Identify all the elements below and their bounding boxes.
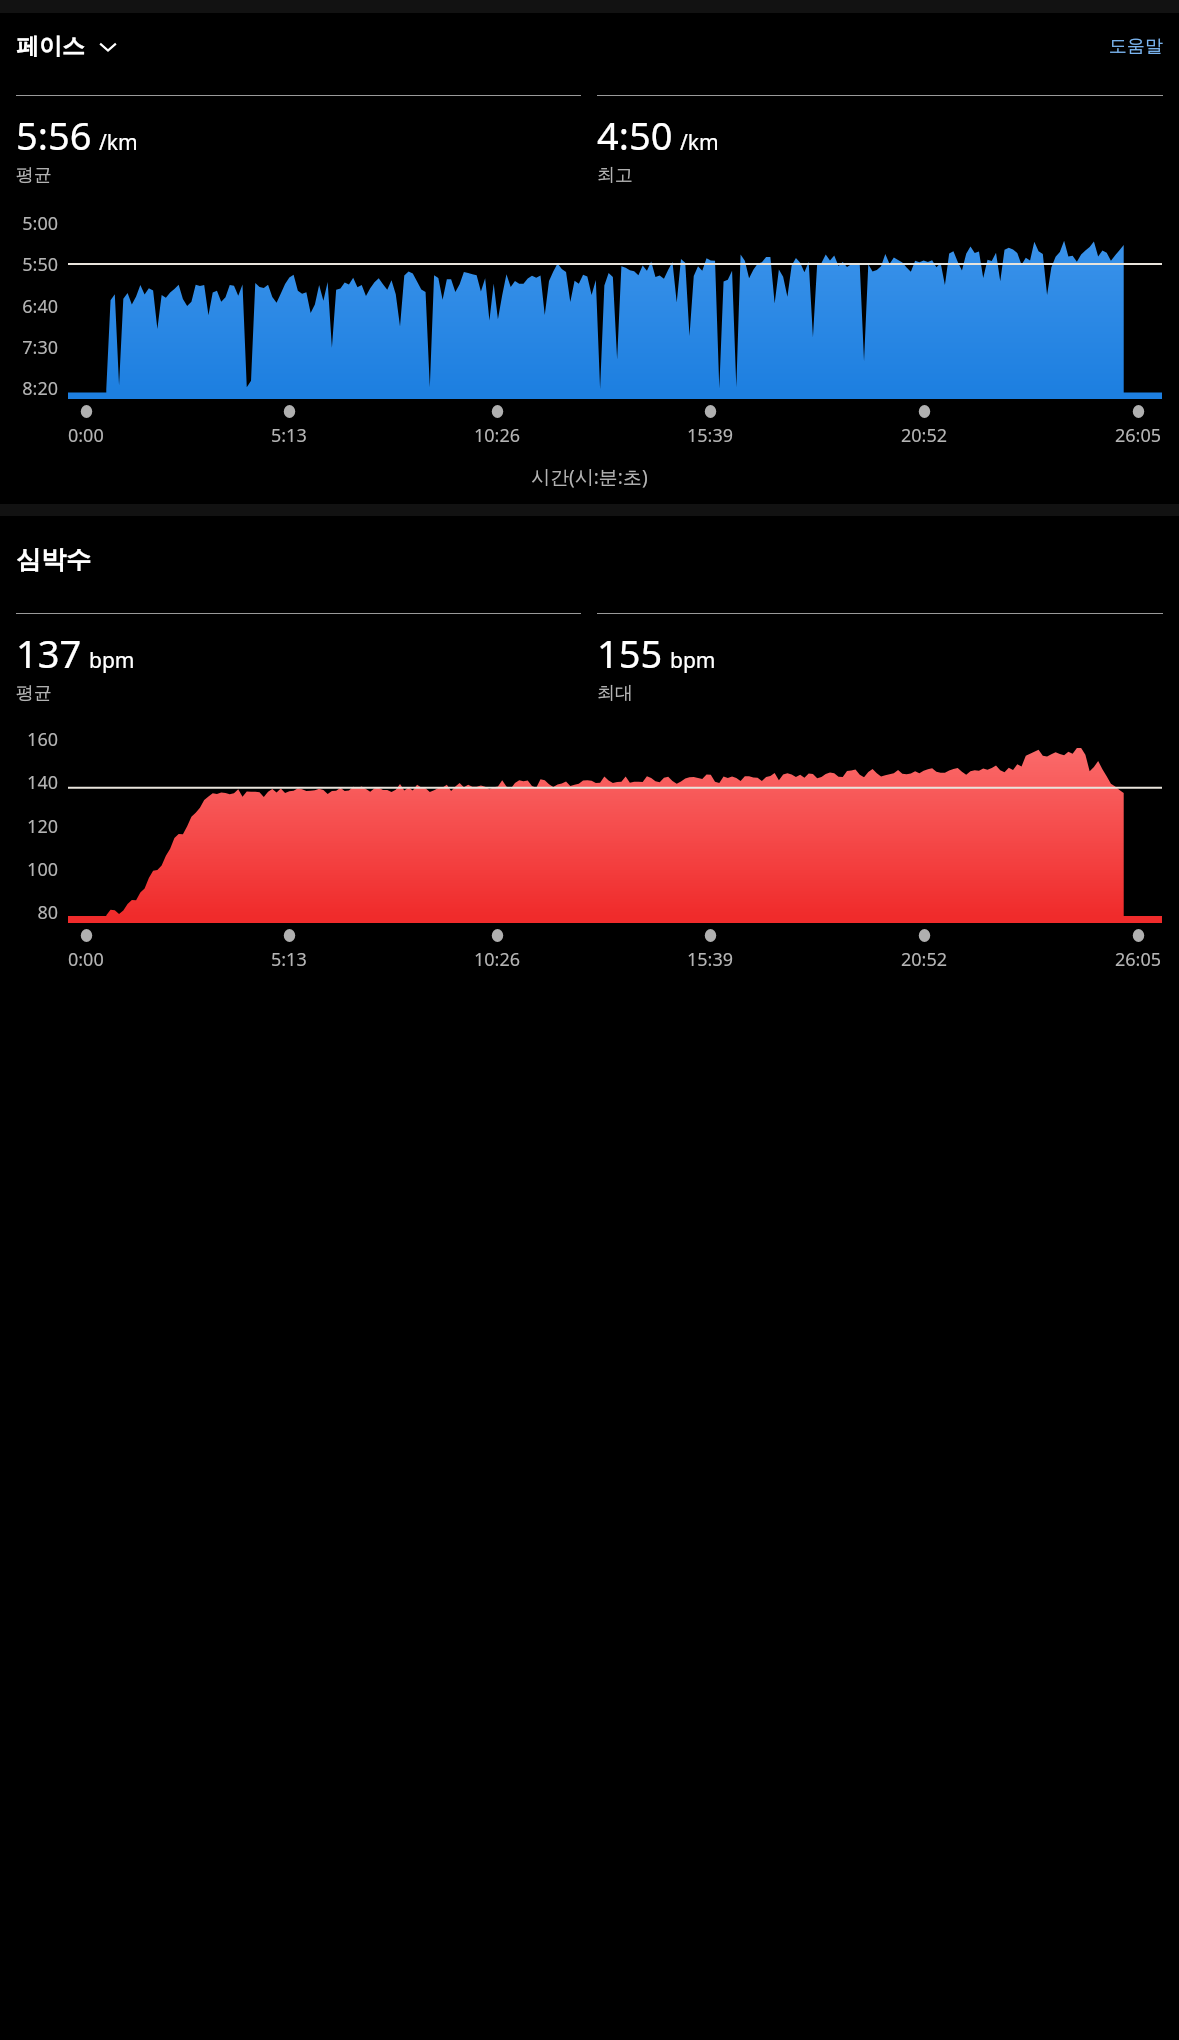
- button[interactable]: 도움말: [1093, 29, 1179, 64]
- staticText: 26:05: [1115, 423, 1162, 448]
- staticText: 8:20: [22, 376, 58, 401]
- staticText: 15:39: [687, 947, 734, 972]
- staticText: 심박수: [16, 544, 91, 575]
- staticText: 155: [597, 627, 663, 679]
- staticText: 20:52: [901, 947, 948, 972]
- staticText: 5:13: [271, 423, 307, 448]
- staticText: 5:50: [22, 252, 58, 277]
- staticText: 26:05: [1115, 947, 1162, 972]
- staticText: 140: [27, 770, 58, 795]
- staticText: bpm: [89, 646, 135, 675]
- staticText: 137: [16, 627, 82, 679]
- staticText: 160: [27, 727, 58, 752]
- staticText: bpm: [670, 646, 716, 675]
- staticText: 120: [27, 814, 58, 839]
- staticText: 0:00: [68, 423, 104, 448]
- staticText: 시간(시:분:초): [531, 464, 648, 490]
- button[interactable]: 페이스: [0, 32, 127, 61]
- staticText: 7:30: [22, 335, 58, 360]
- staticText: 80: [37, 900, 58, 925]
- staticText: 20:52: [901, 423, 948, 448]
- staticText: 100: [27, 857, 58, 882]
- staticText: 5:56: [16, 109, 92, 161]
- staticText: /km: [680, 128, 719, 157]
- staticText: 0:00: [68, 947, 104, 972]
- staticText: 4:50: [597, 109, 673, 161]
- staticText: 5:00: [22, 211, 58, 236]
- staticText: 평균: [16, 682, 52, 705]
- staticText: 6:40: [22, 294, 58, 319]
- staticText: 페이스: [16, 32, 85, 61]
- staticText: 15:39: [687, 423, 734, 448]
- staticText: 도움말: [1109, 35, 1163, 58]
- staticText: 5:13: [271, 947, 307, 972]
- staticText: 최대: [597, 682, 633, 705]
- staticText: /km: [99, 128, 138, 157]
- staticText: 평균: [16, 164, 52, 187]
- staticText: 10:26: [474, 947, 521, 972]
- staticText: 최고: [597, 164, 633, 187]
- staticText: 10:26: [474, 423, 521, 448]
